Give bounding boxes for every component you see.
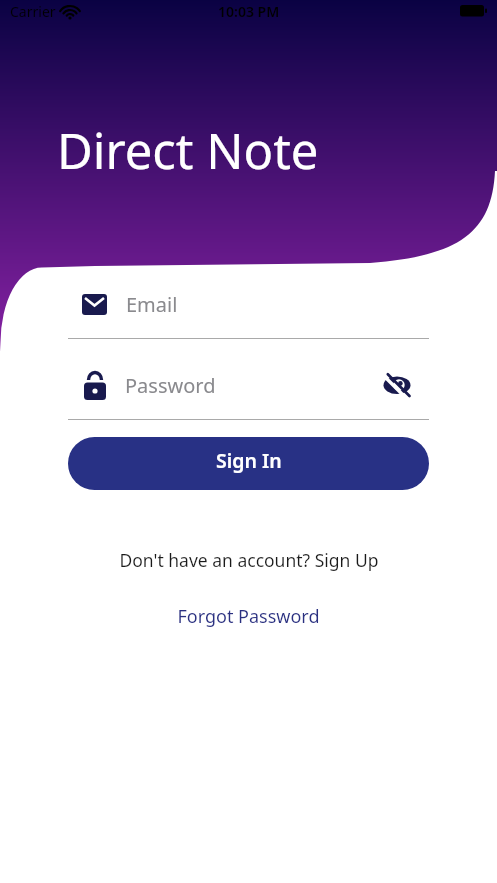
button[interactable]: Sign In [68,437,429,490]
staticText: Email [126,291,178,318]
staticText: Password [125,372,216,399]
staticText: Direct Note [57,117,319,184]
staticText: Carrier [10,2,56,21]
button[interactable]: Password [68,363,429,407]
button[interactable] [383,373,411,397]
button[interactable]: Don't have an account? Sign Up [119,548,379,572]
button[interactable]: Email [68,282,429,326]
staticText: 10:03 PM [218,2,280,21]
button[interactable]: Forgot Password [177,604,320,629]
staticText: Sign In [216,447,282,474]
